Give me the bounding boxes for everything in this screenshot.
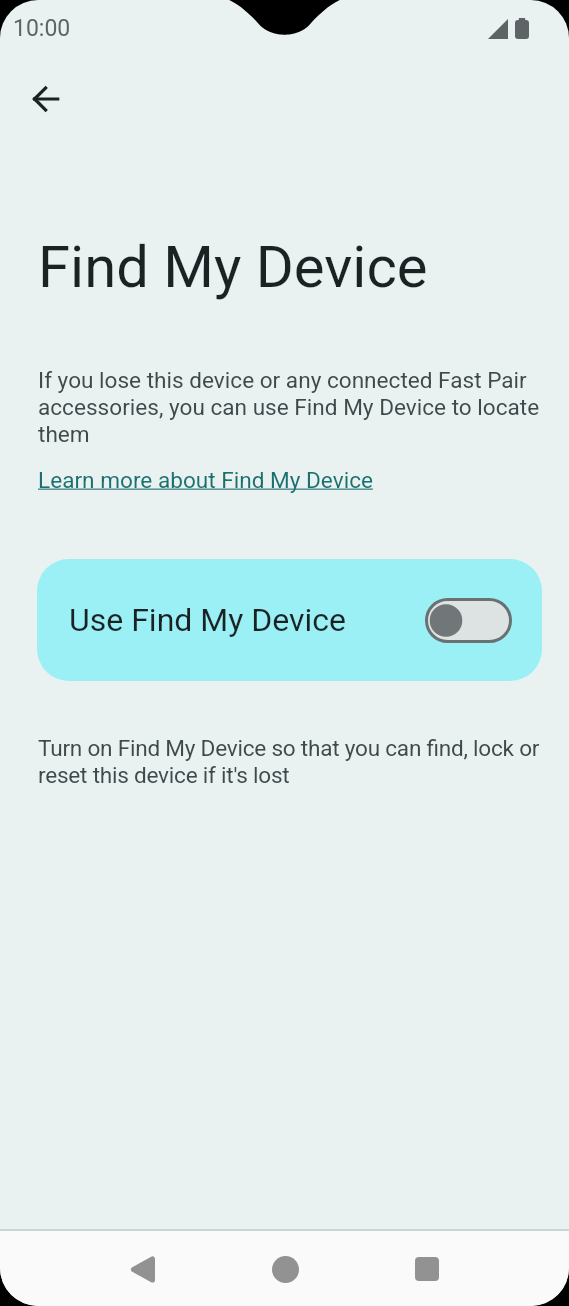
button[interactable]: Recent apps: [392, 1234, 462, 1304]
button[interactable]: Home: [250, 1234, 320, 1304]
staticText: 10:00: [13, 15, 71, 42]
staticText: Use Find My Device: [69, 601, 347, 639]
button[interactable]: Use Find My Device: [37, 559, 542, 681]
staticText: Turn on Find My Device so that you can f…: [38, 735, 553, 789]
staticText: If you lose this device or any connected…: [38, 367, 547, 448]
button[interactable]: Learn more about Find My Device: [38, 467, 373, 493]
staticText: Find My Device: [38, 233, 428, 301]
button[interactable]: Back: [107, 1234, 177, 1304]
button[interactable]: Back: [20, 73, 72, 125]
staticText: Learn more about Find My Device: [38, 467, 373, 493]
